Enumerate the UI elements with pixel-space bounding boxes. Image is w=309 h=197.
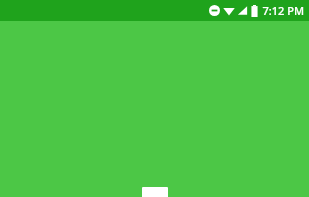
staticText: 7:12 PM bbox=[262, 3, 304, 18]
button[interactable]: Open panel bbox=[142, 187, 168, 197]
